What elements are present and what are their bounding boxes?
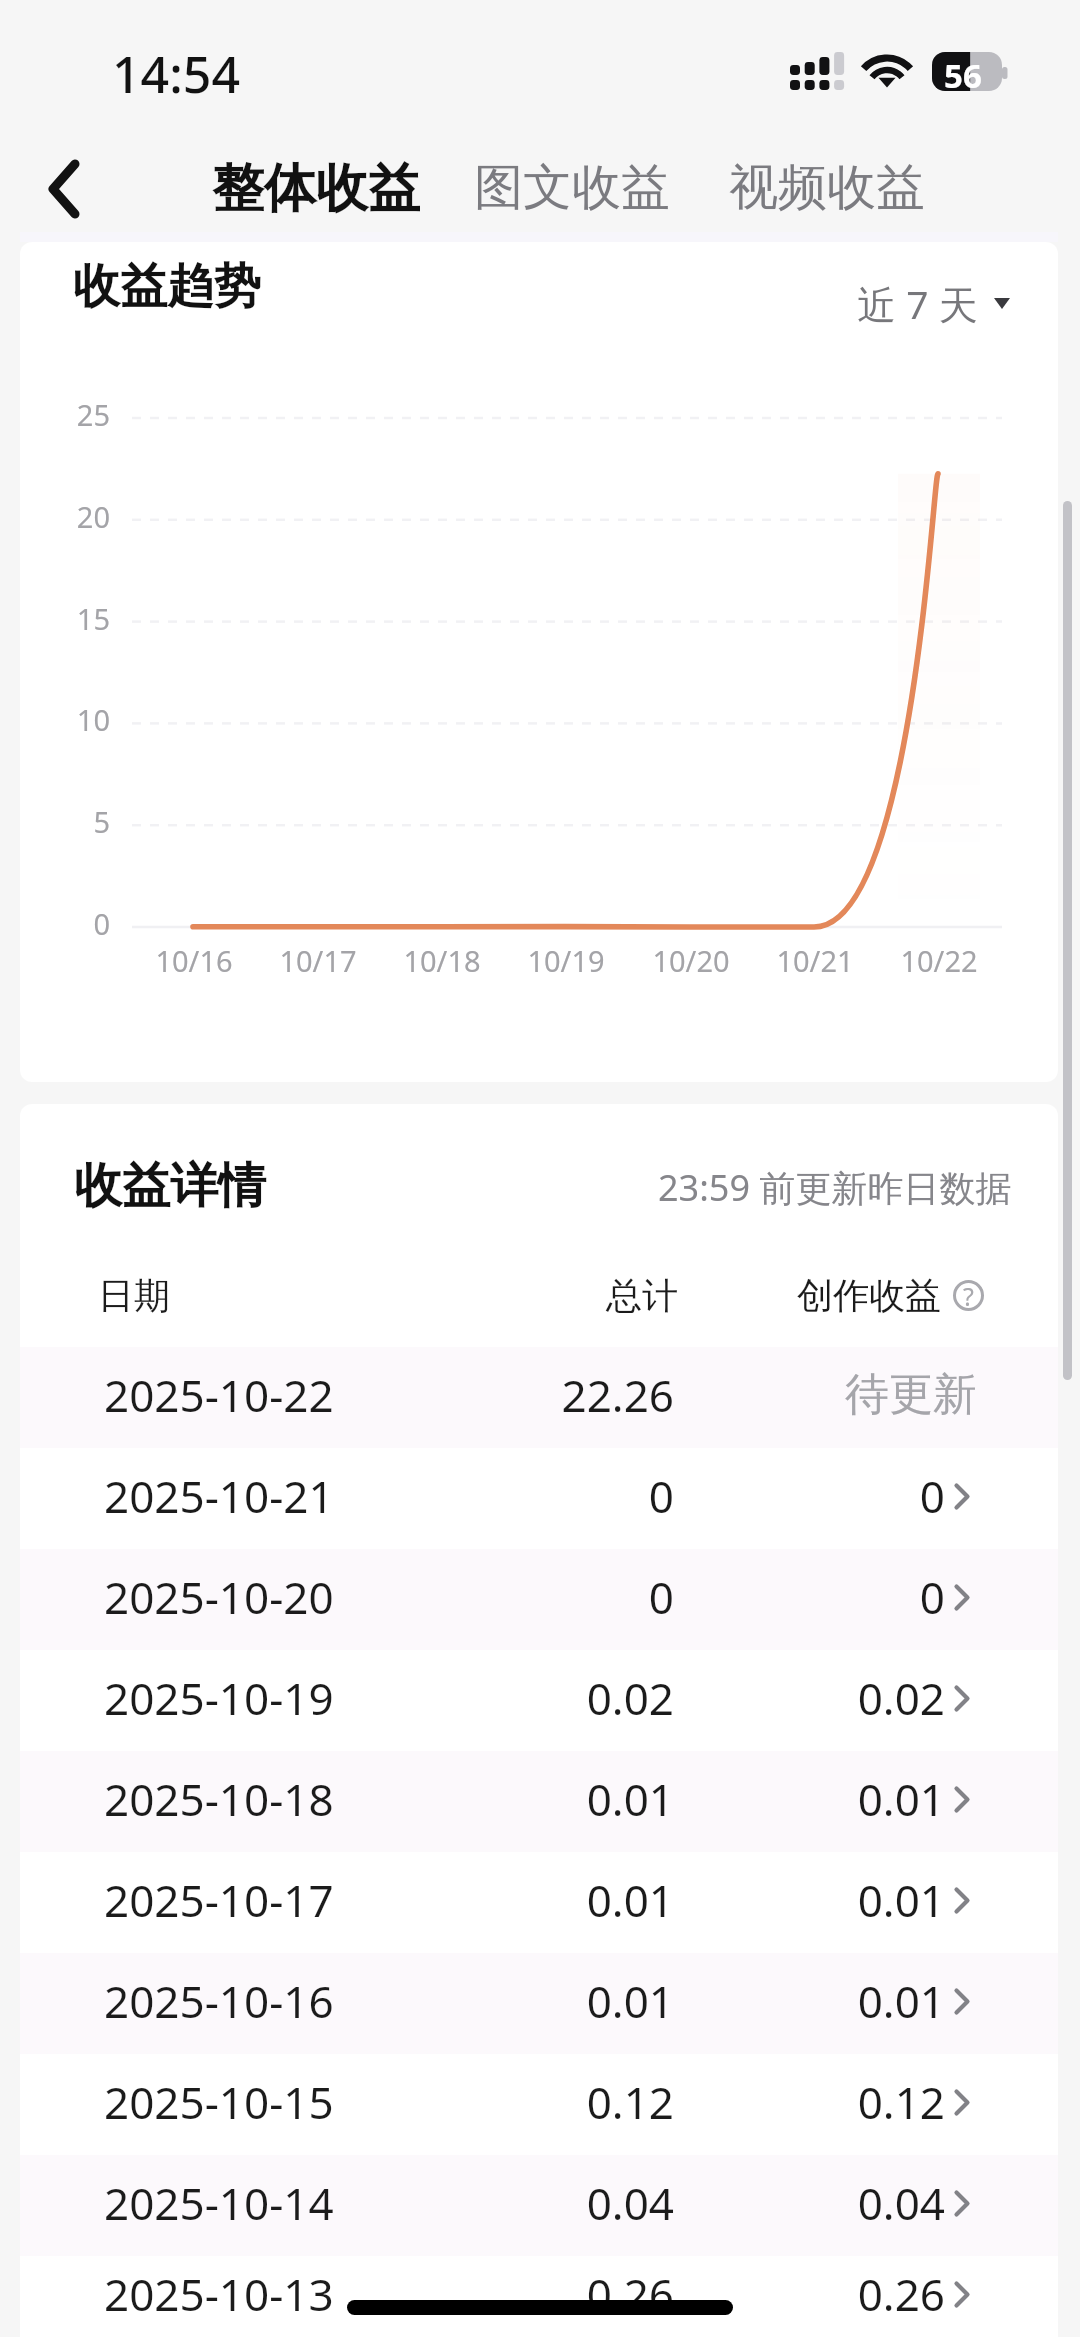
staticText: 0.12: [615, 2072, 945, 2132]
staticText: ?: [963, 1279, 974, 1310]
staticText: 0: [20, 904, 110, 943]
button[interactable]: 视频收益: [729, 129, 925, 247]
staticText: 10/20: [631, 941, 751, 980]
staticText: 0: [615, 1466, 945, 1526]
staticText: 日期: [98, 1273, 170, 1318]
staticText: 10/17: [258, 941, 378, 980]
staticText: 0.01: [344, 1870, 674, 1930]
staticText: 10/16: [134, 941, 254, 980]
staticText: 10/21: [755, 941, 875, 980]
staticText: 2025-10-16: [104, 1971, 334, 2031]
staticText: 0: [615, 1567, 945, 1627]
staticText: 25: [20, 395, 110, 434]
staticText: 总计: [378, 1273, 678, 1318]
staticText: 图文收益: [474, 157, 670, 219]
staticText: 0: [344, 1466, 674, 1526]
button[interactable]: 2025-10-16: [20, 1953, 1058, 2054]
staticText: 收益详情: [74, 1156, 266, 1216]
staticText: 2025-10-21: [104, 1466, 334, 1526]
button[interactable]: 近 7 天: [857, 277, 1010, 330]
staticText: 0.02: [344, 1668, 674, 1728]
button[interactable]: 2025-10-18: [20, 1751, 1058, 1852]
other: Help: [953, 1280, 984, 1311]
staticText: 0.01: [344, 1769, 674, 1829]
staticText: 2025-10-22: [104, 1365, 334, 1425]
staticText: 15: [20, 599, 110, 638]
staticText: 2025-10-20: [104, 1567, 334, 1627]
staticText: 0.26: [344, 2264, 674, 2324]
button[interactable]: 2025-10-20: [20, 1549, 1058, 1650]
staticText: 待更新: [647, 1367, 977, 1422]
staticText: 0.01: [615, 1769, 945, 1829]
staticText: 23:59 前更新昨日数据: [658, 1163, 1012, 1212]
staticText: 2025-10-15: [104, 2072, 334, 2132]
staticText: 0.04: [615, 2173, 945, 2233]
staticText: 22.26: [344, 1365, 674, 1425]
button[interactable]: 图文收益: [474, 129, 670, 247]
staticText: 10/18: [382, 941, 502, 980]
staticText: 10/22: [879, 941, 999, 980]
staticText: 2025-10-18: [104, 1769, 334, 1829]
staticText: 0.26: [615, 2264, 945, 2324]
staticText: 10: [20, 700, 110, 739]
staticText: 2025-10-19: [104, 1668, 334, 1728]
button[interactable]: 2025-10-22: [20, 1347, 1058, 1448]
staticText: 0.01: [344, 1971, 674, 2031]
staticText: 近 7 天: [857, 277, 978, 330]
button[interactable]: Back: [0, 127, 130, 247]
staticText: 收益趋势: [73, 257, 261, 316]
button[interactable]: 2025-10-17: [20, 1852, 1058, 1953]
button[interactable]: 整体收益: [212, 128, 420, 248]
staticText: 0.12: [344, 2072, 674, 2132]
staticText: 创作收益: [797, 1273, 941, 1318]
staticText: 整体收益: [212, 156, 420, 220]
button[interactable]: 2025-10-15: [20, 2054, 1058, 2155]
staticText: 56: [944, 53, 982, 93]
staticText: 0.04: [344, 2173, 674, 2233]
staticText: 2025-10-13: [104, 2264, 334, 2324]
staticText: 0.02: [615, 1668, 945, 1728]
staticText: 视频收益: [729, 157, 925, 219]
staticText: 2025-10-17: [104, 1870, 334, 1930]
staticText: 2025-10-14: [104, 2173, 334, 2233]
button[interactable]: 2025-10-13: [20, 2256, 1058, 2337]
button[interactable]: 2025-10-21: [20, 1448, 1058, 1549]
button[interactable]: 2025-10-14: [20, 2155, 1058, 2256]
button[interactable]: 创作收益: [797, 1273, 984, 1318]
staticText: 10/19: [506, 941, 626, 980]
staticText: 20: [20, 497, 110, 536]
staticText: 0: [344, 1567, 674, 1627]
button[interactable]: 2025-10-19: [20, 1650, 1058, 1751]
staticText: 14:54: [112, 40, 240, 108]
staticText: 5: [20, 802, 110, 841]
staticText: 0.01: [615, 1870, 945, 1930]
staticText: 0.01: [615, 1971, 945, 2031]
